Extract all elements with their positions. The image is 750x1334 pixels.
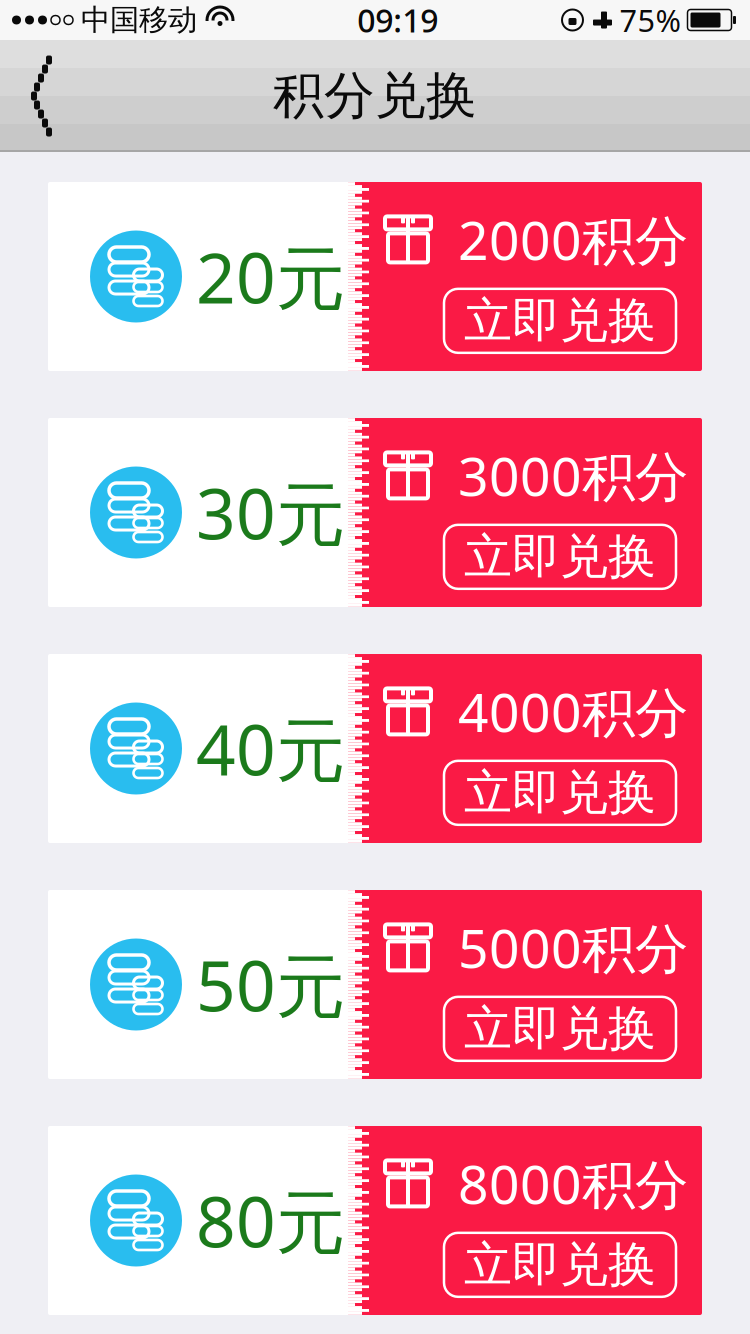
staticText: 8000积分	[458, 1148, 688, 1219]
button[interactable]: 30元	[48, 418, 702, 607]
staticText: 中国移动	[81, 2, 197, 38]
staticText: 09:19	[357, 0, 438, 41]
staticText: 30元	[196, 466, 345, 559]
staticText: 立即兑换	[464, 1235, 656, 1294]
button[interactable]: 20元	[48, 182, 702, 371]
button[interactable]: 立即兑换	[444, 1233, 676, 1297]
staticText: 3000积分	[458, 440, 688, 511]
button[interactable]: 立即兑换	[444, 525, 676, 589]
staticText: 5000积分	[458, 912, 688, 983]
staticText: 立即兑换	[464, 291, 656, 350]
staticText: 2000积分	[458, 204, 688, 275]
staticText: 75%	[619, 0, 680, 40]
button[interactable]: 40元	[48, 654, 702, 843]
staticText: 50元	[196, 938, 345, 1031]
button[interactable]: 立即兑换	[444, 289, 676, 353]
staticText: 立即兑换	[464, 999, 656, 1058]
staticText: 80元	[196, 1174, 345, 1267]
button[interactable]: 80元	[48, 1126, 702, 1315]
button[interactable]: 立即兑换	[444, 997, 676, 1061]
staticText: 20元	[196, 230, 345, 323]
staticText: 立即兑换	[464, 763, 656, 822]
staticText: 积分兑换	[273, 65, 477, 127]
staticText: 40元	[196, 702, 345, 795]
staticText: 4000积分	[458, 676, 688, 747]
button[interactable]: Back	[0, 51, 76, 141]
button[interactable]: 50元	[48, 890, 702, 1079]
staticText: 立即兑换	[464, 527, 656, 586]
button[interactable]: 立即兑换	[444, 761, 676, 825]
